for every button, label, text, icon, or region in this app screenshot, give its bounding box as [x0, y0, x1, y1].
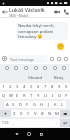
button[interactable]: Emoji — [48, 53, 55, 64]
staticText: A — [6, 102, 9, 108]
button[interactable]: K — [52, 101, 59, 108]
button[interactable]: Keyboard tool — [60, 64, 67, 72]
button[interactable]: 4 — [21, 83, 28, 90]
button[interactable]: T — [28, 92, 35, 99]
button[interactable]: Enter — [60, 119, 70, 127]
button[interactable]: B — [39, 110, 46, 117]
staticText: I — [52, 93, 54, 99]
button[interactable]: , — [10, 119, 17, 127]
button[interactable]: Back — [11, 128, 23, 140]
button[interactable]: Shift — [0, 110, 11, 117]
button[interactable]: Camera — [55, 53, 62, 64]
staticText: 7 — [44, 84, 47, 90]
staticText: R — [23, 93, 26, 99]
button[interactable]: 5 — [28, 83, 35, 90]
button[interactable]: S — [10, 101, 17, 108]
button[interactable]: Recent apps — [35, 128, 47, 140]
button[interactable]: 1 — [0, 83, 7, 90]
staticText: , — [13, 120, 15, 126]
button[interactable]: G — [31, 101, 38, 108]
staticText: 2 — [9, 84, 12, 90]
button[interactable]: Emoji message — [57, 43, 64, 50]
button[interactable]: Voice message — [62, 53, 69, 64]
button[interactable]: 2 — [7, 83, 14, 90]
button[interactable]: 7 — [42, 83, 49, 90]
button[interactable]: Video call — [52, 6, 61, 18]
button[interactable]: Add attachment — [0, 53, 8, 64]
staticText: 0 — [65, 84, 68, 90]
button[interactable]: O — [56, 92, 63, 99]
staticText: T — [30, 93, 33, 99]
button[interactable]: W — [7, 92, 14, 99]
button[interactable]: N — [46, 110, 53, 117]
button[interactable]: 0 — [63, 83, 70, 90]
button[interactable]: Text message — [8, 55, 48, 63]
button[interactable]: Lukáš Václavík — [9, 6, 52, 18]
staticText: 3 — [16, 84, 19, 90]
staticText: C — [27, 111, 30, 117]
button[interactable]: P — [63, 92, 70, 99]
staticText: Navika lehyl verch, vzcnapsan potlani fe… — [18, 23, 66, 39]
button[interactable]: Keyboard tool — [32, 64, 39, 72]
button[interactable]: D — [17, 101, 24, 108]
button[interactable]: J — [45, 101, 52, 108]
staticText: V — [34, 111, 37, 117]
button[interactable]: I — [49, 92, 56, 99]
staticText: 6 — [37, 84, 40, 90]
button[interactable]: 9 — [56, 83, 63, 90]
button[interactable]: C — [25, 110, 32, 117]
staticText: Beny — [54, 75, 64, 80]
button[interactable]: 8 — [49, 83, 56, 90]
button[interactable]: M — [53, 110, 60, 117]
button[interactable]: Keyboard tool — [41, 64, 48, 72]
button[interactable]: Keyboard tool — [12, 64, 19, 72]
button[interactable]: Q — [0, 92, 7, 99]
button[interactable]: X — [18, 110, 25, 117]
button[interactable]: Y — [35, 92, 42, 99]
button[interactable]: . — [53, 119, 60, 127]
staticText: U — [44, 93, 48, 99]
button[interactable]: V — [32, 110, 39, 117]
staticText: N — [48, 111, 52, 117]
staticText: S — [12, 102, 15, 108]
button[interactable]: Z — [11, 110, 18, 117]
button[interactable]: F — [24, 101, 31, 108]
staticText: D — [19, 102, 23, 108]
staticText: 4 — [23, 84, 26, 90]
button[interactable]: E — [14, 92, 21, 99]
staticText: Q — [2, 93, 6, 99]
button[interactable]: Back — [0, 6, 9, 18]
button[interactable]: Backspace — [60, 110, 70, 117]
staticText: O — [58, 93, 62, 99]
button[interactable]: Call — [61, 6, 70, 18]
button[interactable]: L — [59, 101, 66, 108]
button[interactable]: Keyboard tool — [51, 64, 58, 72]
staticText: J — [48, 102, 50, 108]
staticText: . — [56, 120, 58, 126]
button[interactable]: 6 — [35, 83, 42, 90]
button[interactable]: Beny — [47, 72, 70, 82]
staticText: H — [40, 102, 44, 108]
staticText: ?123 — [2, 121, 9, 125]
button[interactable]: R — [21, 92, 28, 99]
button[interactable]: Gboard — [24, 72, 47, 82]
button[interactable]: Navika lehyl verch, vzcnapsan potlani fe… — [16, 22, 68, 40]
staticText: Y — [37, 93, 40, 99]
button[interactable]: Home — [23, 128, 35, 140]
staticText: L — [61, 102, 64, 108]
button[interactable]: Keyboard tool — [3, 64, 10, 72]
staticText: E — [16, 93, 19, 99]
button[interactable]: A — [4, 101, 10, 108]
staticText: 9 — [58, 84, 61, 90]
button[interactable]: 3 — [14, 83, 21, 90]
staticText: X — [20, 111, 23, 117]
button[interactable]: H — [38, 101, 45, 108]
button[interactable]: ?123 — [0, 119, 10, 127]
button[interactable]: U — [42, 92, 49, 99]
staticText: K — [54, 102, 57, 108]
button[interactable]: Keyboard tool — [22, 64, 29, 72]
staticText: Gboard — [28, 75, 43, 80]
staticText: Text message — [10, 57, 35, 62]
